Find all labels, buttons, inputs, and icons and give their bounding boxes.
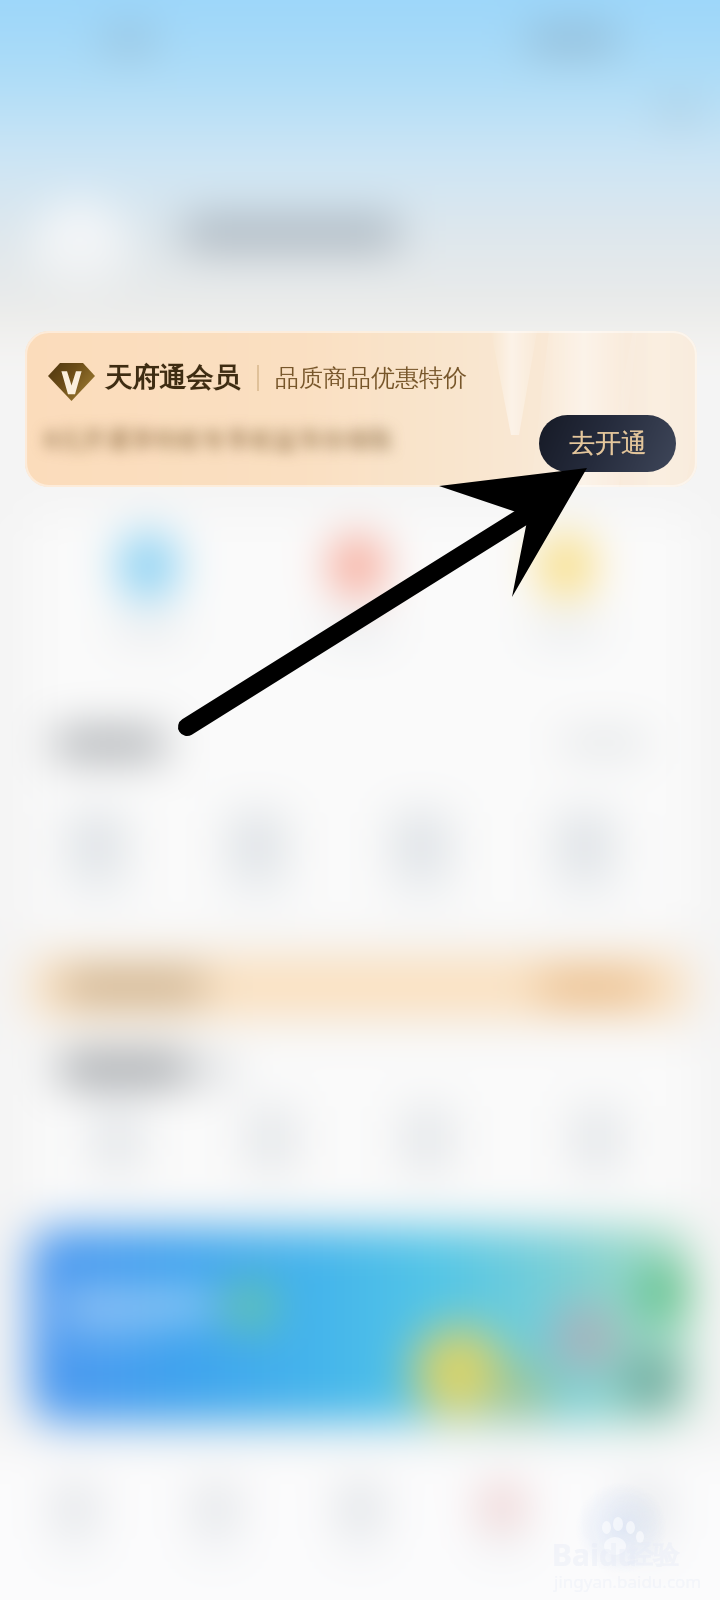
staticText: 0元开通享特权专享权益等你领取 [44, 422, 394, 455]
other: Pointer arrow [0, 0, 720, 1600]
staticText: 品质商品优惠特价 [275, 363, 467, 393]
staticText: 经验 [627, 1539, 679, 1572]
staticText: 去开通 [569, 427, 647, 460]
button[interactable]: 天府通会员 [25, 331, 697, 487]
staticText: Baidu [552, 1534, 638, 1575]
staticText: 天府通会员 [105, 361, 240, 395]
button[interactable]: 去开通 [539, 415, 676, 472]
